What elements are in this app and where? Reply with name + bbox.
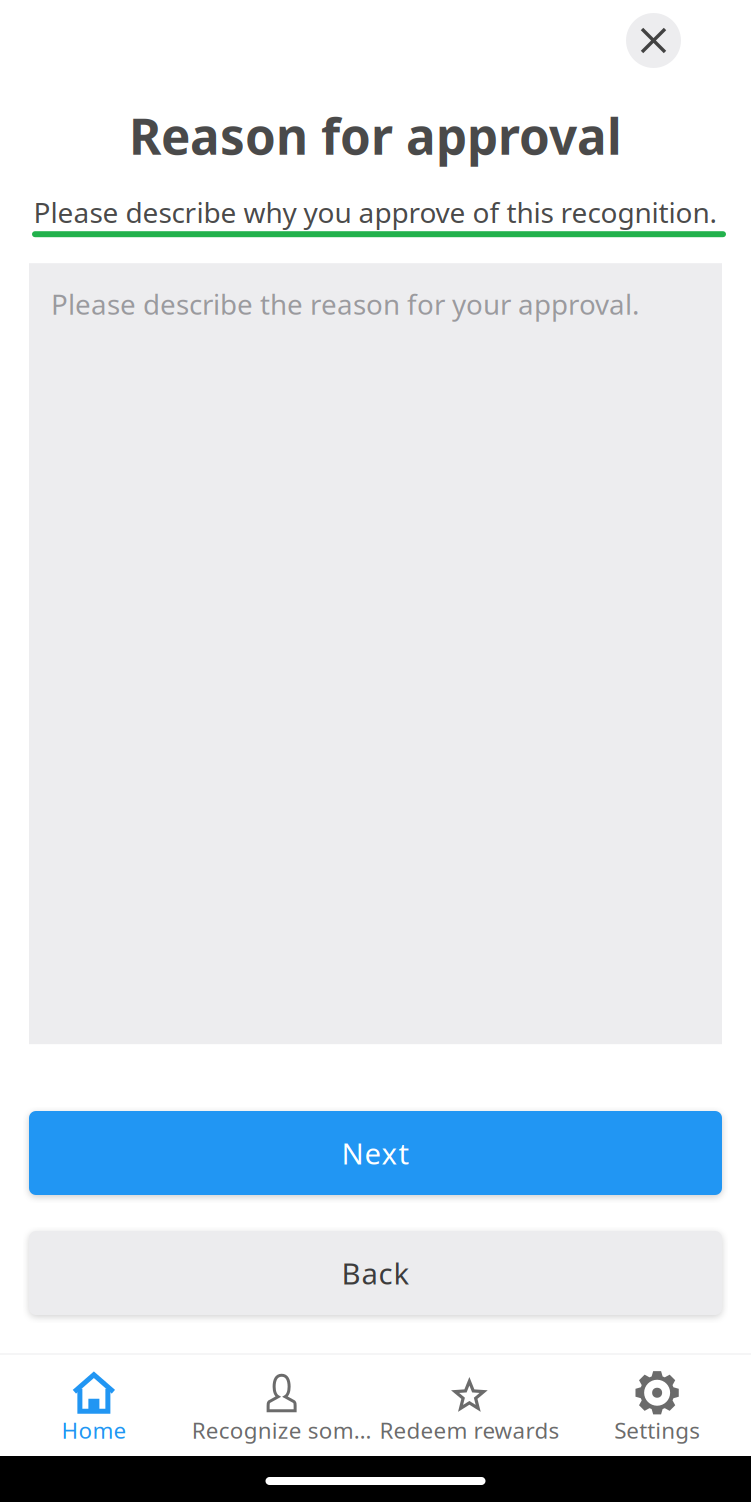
staticText: Settings	[614, 1415, 700, 1445]
button[interactable]: Settings	[563, 1355, 751, 1456]
staticText: Home	[61, 1415, 126, 1445]
staticText: Recognize som…	[192, 1415, 372, 1445]
button[interactable]: Back	[29, 1231, 722, 1315]
staticText: Please describe why you approve of this …	[33, 193, 717, 231]
staticText: Next	[341, 1133, 409, 1173]
staticText: Back	[341, 1253, 409, 1293]
button[interactable]: Home	[0, 1355, 188, 1456]
button[interactable]: Redeem rewards	[375, 1355, 563, 1456]
staticText: Reason for approval	[129, 102, 622, 169]
staticText: Redeem rewards	[379, 1415, 559, 1445]
button[interactable]: Recognize som…	[188, 1355, 376, 1456]
button[interactable]: Next	[29, 1111, 722, 1195]
staticText: Please describe the reason for your appr…	[51, 285, 639, 323]
button[interactable]: Close	[626, 13, 681, 68]
